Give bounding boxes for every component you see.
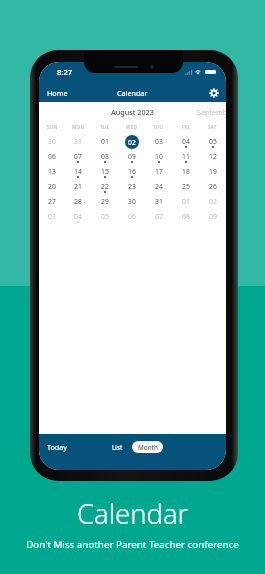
staticText: Calendar — [77, 495, 189, 532]
staticText: 31 — [155, 197, 163, 206]
button[interactable]: 12 — [199, 149, 226, 164]
button[interactable]: 08 — [172, 209, 199, 224]
button[interactable]: 08 — [91, 149, 118, 164]
button[interactable]: 30 — [118, 194, 145, 209]
button[interactable]: Settings — [207, 86, 220, 99]
staticText: 03 — [48, 212, 56, 221]
button[interactable]: 31 — [145, 194, 172, 209]
button[interactable]: 24 — [145, 179, 172, 194]
button[interactable]: 01 — [172, 194, 199, 209]
staticText: September 2023 — [197, 107, 226, 117]
staticText: 28 — [74, 197, 82, 206]
button[interactable]: 07 — [65, 149, 91, 164]
staticText: 01 — [182, 197, 190, 206]
staticText: 07 — [74, 152, 82, 161]
button[interactable]: 26 — [199, 179, 226, 194]
button[interactable]: 30 — [39, 134, 65, 149]
staticText: 08 — [101, 152, 109, 161]
staticText: 8:27 — [57, 67, 73, 77]
staticText: List — [112, 443, 123, 452]
staticText: 13 — [48, 167, 56, 176]
button[interactable]: 23 — [118, 179, 145, 194]
button[interactable]: Calendar — [117, 88, 148, 98]
staticText: 08 — [182, 212, 190, 221]
button[interactable]: 04 — [65, 209, 91, 224]
staticText: 26 — [209, 182, 217, 191]
button[interactable]: 11 — [172, 149, 199, 164]
staticText: Don't Miss another Parent Teacher confer… — [26, 538, 239, 551]
staticText: TUE — [100, 124, 110, 130]
staticText: 12 — [209, 152, 217, 161]
staticText: 07 — [155, 212, 163, 221]
staticText: 02 — [209, 197, 217, 206]
button[interactable]: 28 — [65, 194, 91, 209]
button[interactable]: 29 — [91, 194, 118, 209]
staticText: 11 — [182, 152, 190, 161]
staticText: THU — [153, 124, 164, 130]
button[interactable]: 16 — [118, 164, 145, 179]
staticText: 06 — [48, 152, 56, 161]
staticText: 30 — [128, 197, 136, 206]
staticText: Home — [47, 88, 68, 98]
button[interactable]: List — [106, 441, 128, 453]
staticText: 30 — [48, 137, 56, 146]
staticText: 05 — [209, 137, 217, 146]
staticText: SAT — [208, 124, 217, 130]
button[interactable]: Home — [47, 86, 68, 99]
button[interactable]: 01 — [91, 134, 118, 149]
button[interactable]: 19 — [199, 164, 226, 179]
staticText: 05 — [101, 212, 109, 221]
staticText: 09 — [128, 152, 136, 161]
staticText: August 2023 — [111, 107, 154, 117]
staticText: WED — [126, 124, 138, 130]
staticText: 15 — [101, 167, 109, 176]
button[interactable]: August 2023 — [107, 106, 158, 118]
staticText: 06 — [128, 212, 136, 221]
staticText: 17 — [155, 167, 163, 176]
staticText: Calendar — [117, 88, 148, 98]
button[interactable]: 10 — [145, 149, 172, 164]
button[interactable]: 02 — [199, 194, 226, 209]
button[interactable]: 25 — [172, 179, 199, 194]
button[interactable]: 21 — [65, 179, 91, 194]
button[interactable]: 02 — [118, 134, 145, 149]
button[interactable]: 14 — [65, 164, 91, 179]
button[interactable]: 05 — [199, 134, 226, 149]
staticText: 09 — [209, 212, 217, 221]
button[interactable]: 18 — [172, 164, 199, 179]
staticText: 29 — [101, 197, 109, 206]
button[interactable]: 31 — [65, 134, 91, 149]
button[interactable]: 09 — [199, 209, 226, 224]
button[interactable]: 15 — [91, 164, 118, 179]
button[interactable]: 06 — [118, 209, 145, 224]
button[interactable]: 03 — [145, 134, 172, 149]
button[interactable]: 07 — [145, 209, 172, 224]
button[interactable]: Month — [132, 441, 163, 453]
staticText: MON — [72, 124, 85, 130]
staticText: 23 — [128, 182, 136, 191]
staticText: 14 — [74, 167, 82, 176]
staticText: 04 — [74, 212, 82, 221]
button[interactable]: Today — [47, 440, 67, 453]
staticText: 02 — [128, 138, 136, 147]
staticText: Month — [138, 443, 158, 452]
button[interactable]: 20 — [39, 179, 65, 194]
staticText: 04 — [182, 137, 190, 146]
button[interactable]: 03 — [39, 209, 65, 224]
staticText: 03 — [155, 137, 163, 146]
button[interactable]: 22 — [91, 179, 118, 194]
button[interactable]: 17 — [145, 164, 172, 179]
staticText: 21 — [74, 182, 82, 191]
staticText: FRI — [182, 124, 190, 130]
button[interactable]: 06 — [39, 149, 65, 164]
button[interactable]: 13 — [39, 164, 65, 179]
staticText: 18 — [182, 167, 190, 176]
button[interactable]: 09 — [118, 149, 145, 164]
button[interactable]: 27 — [39, 194, 65, 209]
button[interactable]: 05 — [91, 209, 118, 224]
staticText: 01 — [101, 137, 109, 146]
button[interactable]: 04 — [172, 134, 199, 149]
staticText: SUN — [47, 124, 58, 130]
staticText: 22 — [101, 182, 109, 191]
